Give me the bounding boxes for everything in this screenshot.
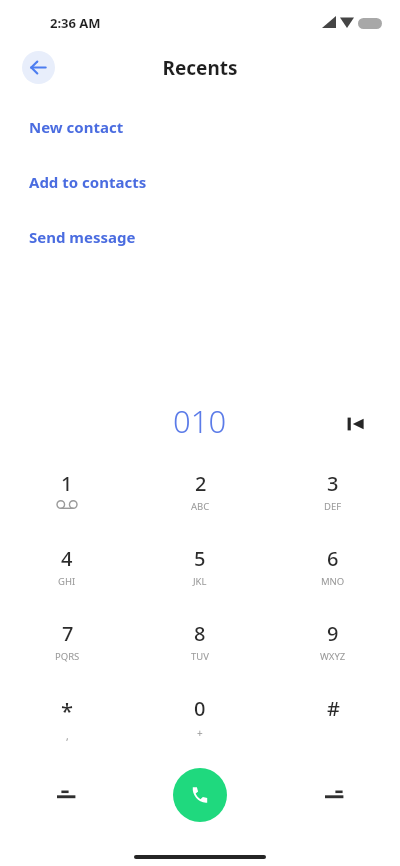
- button[interactable]: Backspace: [332, 400, 380, 448]
- button[interactable]: 3: [289, 466, 377, 536]
- staticText: JKL: [193, 575, 207, 588]
- staticText: ABC: [191, 500, 210, 513]
- button[interactable]: Send message: [14, 223, 264, 250]
- button[interactable]: Call: [173, 768, 227, 822]
- button[interactable]: *: [23, 691, 111, 761]
- button[interactable]: Add to contacts: [14, 168, 264, 195]
- button[interactable]: 6: [289, 541, 377, 611]
- staticText: 4: [61, 545, 73, 572]
- button[interactable]: 4: [23, 541, 111, 611]
- staticText: MNO: [321, 575, 345, 588]
- staticText: Recents: [162, 55, 238, 81]
- button[interactable]: New contact: [14, 113, 264, 140]
- button[interactable]: 8: [156, 616, 244, 686]
- button[interactable]: Add contact: [50, 778, 84, 812]
- button[interactable]: 1: [23, 466, 111, 536]
- button[interactable]: 7: [23, 616, 111, 686]
- staticText: ,: [66, 729, 69, 743]
- button[interactable]: Back: [22, 51, 55, 84]
- staticText: #: [327, 695, 340, 722]
- staticText: 8: [194, 620, 206, 647]
- staticText: 9: [327, 620, 339, 647]
- staticText: 1: [61, 470, 73, 497]
- button[interactable]: 5: [156, 541, 244, 611]
- staticText: Add to contacts: [29, 172, 147, 192]
- staticText: WXYZ: [320, 650, 346, 663]
- staticText: New contact: [29, 117, 124, 137]
- staticText: DEF: [324, 500, 342, 513]
- staticText: 3: [327, 470, 339, 497]
- button[interactable]: #: [289, 691, 377, 761]
- button[interactable]: More options: [318, 778, 352, 812]
- staticText: 6: [327, 545, 339, 572]
- staticText: 0: [194, 695, 206, 722]
- staticText: TUV: [191, 650, 209, 663]
- staticText: 010: [173, 400, 227, 442]
- staticText: PQRS: [55, 650, 80, 663]
- staticText: *: [61, 695, 74, 725]
- staticText: 5: [194, 545, 206, 572]
- button[interactable]: 0: [156, 691, 244, 761]
- button[interactable]: 9: [289, 616, 377, 686]
- staticText: Send message: [29, 227, 136, 247]
- staticText: 2:36 AM: [50, 14, 101, 32]
- staticText: +: [197, 726, 203, 740]
- button[interactable]: 2: [156, 466, 244, 536]
- staticText: 7: [62, 620, 74, 647]
- staticText: 2: [195, 470, 207, 497]
- staticText: GHI: [58, 575, 76, 588]
